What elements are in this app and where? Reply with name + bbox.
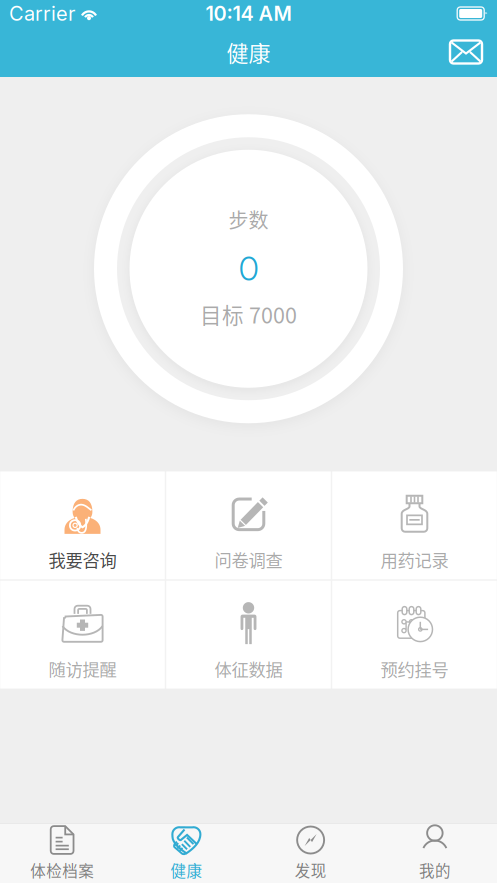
- staticText: 步数: [228, 205, 268, 234]
- button[interactable]: 随访提醒: [0, 581, 165, 689]
- button[interactable]: 体检档案: [0, 823, 124, 883]
- button[interactable]: 发现: [248, 823, 373, 883]
- button[interactable]: 用药记录: [332, 471, 497, 579]
- staticText: 体征数据: [214, 656, 282, 681]
- staticText: 发现: [295, 859, 327, 881]
- button[interactable]: 我的: [373, 823, 497, 883]
- staticText: 预约挂号: [380, 656, 448, 681]
- button[interactable]: 体征数据: [166, 581, 331, 689]
- staticText: 我的: [419, 859, 451, 881]
- staticText: 目标 7000: [200, 299, 297, 330]
- button[interactable]: 预约挂号: [332, 581, 497, 689]
- staticText: 我要咨询: [48, 547, 116, 572]
- staticText: 随访提醒: [48, 656, 116, 681]
- button[interactable]: 健康: [124, 823, 248, 883]
- staticText: 问卷调查: [214, 547, 282, 572]
- staticText: 健康: [170, 859, 202, 881]
- staticText: 10:14 AM: [205, 1, 291, 26]
- staticText: 0: [238, 248, 258, 289]
- staticText: 健康: [226, 36, 270, 68]
- button[interactable]: 消息: [435, 27, 497, 77]
- staticText: 体检档案: [30, 859, 94, 881]
- staticText: 用药记录: [380, 547, 448, 572]
- staticText: Carrier: [9, 1, 75, 26]
- button[interactable]: 我要咨询: [0, 471, 165, 579]
- button[interactable]: 问卷调查: [166, 471, 331, 579]
